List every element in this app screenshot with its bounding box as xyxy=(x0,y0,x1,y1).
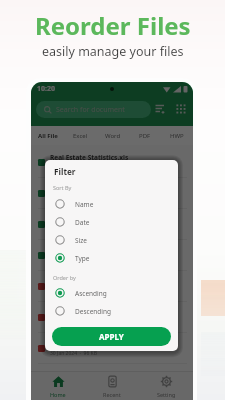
staticText: Date xyxy=(75,218,90,227)
staticText: Filter xyxy=(54,166,76,177)
button[interactable]: Sort xyxy=(151,100,169,118)
staticText: Real Estate Statistics.xls xyxy=(50,153,129,162)
staticText: Sort By xyxy=(53,184,72,191)
staticText: Product Inventory.xls xyxy=(50,246,120,255)
staticText: 09 Mar 2024 · 18 KB xyxy=(50,195,100,202)
button[interactable]: Grid view xyxy=(173,100,189,118)
button[interactable]: Rental Agreement.pdf xyxy=(38,271,187,301)
button[interactable]: Search for document xyxy=(36,101,151,118)
staticText: 14 Feb 2024 · 80 KB xyxy=(50,288,99,295)
staticText: Annual Sales Report.xls xyxy=(50,215,126,224)
staticText: Name xyxy=(75,200,94,209)
staticText: 12 Mar 2024 · 24 KB xyxy=(50,164,100,171)
staticText: PDF xyxy=(139,132,151,140)
staticText: All File xyxy=(38,132,58,140)
button[interactable]: All File xyxy=(31,126,64,145)
staticText: Descending xyxy=(75,307,112,316)
staticText: User Manual v3.pdf xyxy=(50,339,113,348)
staticText: Recent xyxy=(103,391,121,398)
button[interactable]: Type xyxy=(45,249,178,267)
button[interactable]: Name xyxy=(45,195,178,213)
button[interactable]: Invoice 2024-02.pdf xyxy=(38,302,187,332)
staticText: 10:20 xyxy=(37,84,55,94)
staticText: Order by xyxy=(53,274,76,281)
staticText: Ascending xyxy=(75,289,107,298)
button[interactable]: Excel xyxy=(64,126,97,145)
button[interactable]: HWP xyxy=(161,126,193,145)
button[interactable]: Home xyxy=(31,372,85,400)
button[interactable]: Size xyxy=(45,231,178,249)
staticText: Word xyxy=(105,132,121,140)
button[interactable]: Monthly Budget Plan.xls xyxy=(38,178,187,208)
staticText: Reorder Files xyxy=(35,9,191,42)
staticText: 28 Feb 2024 · 36 KB xyxy=(50,226,99,233)
staticText: APPLY xyxy=(99,331,124,342)
button[interactable]: Product Inventory.xls xyxy=(38,240,187,270)
button[interactable]: Annual Sales Report.xls xyxy=(38,209,187,239)
button[interactable]: User Manual v3.pdf xyxy=(38,333,187,363)
staticText: 30 Jan 2024 · 96 KB xyxy=(50,350,97,357)
button[interactable]: Real Estate Statistics.xls xyxy=(38,147,187,177)
staticText: Monthly Budget Plan.xls xyxy=(50,184,129,193)
staticText: Size xyxy=(75,236,87,245)
staticText: Rental Agreement.pdf xyxy=(50,277,122,286)
button[interactable]: Date xyxy=(45,213,178,231)
button[interactable]: Ascending xyxy=(45,284,178,302)
staticText: Setting xyxy=(157,391,176,398)
button[interactable]: Recent xyxy=(85,372,139,400)
button[interactable]: Setting xyxy=(139,372,193,400)
staticText: HWP xyxy=(170,132,184,140)
button[interactable]: Descending xyxy=(45,302,178,320)
staticText: Excel xyxy=(73,132,88,140)
staticText: Search for document xyxy=(56,105,125,115)
button[interactable]: APPLY xyxy=(52,327,171,346)
staticText: Home xyxy=(50,391,66,398)
staticText: Type xyxy=(75,254,90,263)
staticText: 21 Feb 2024 · 12 KB xyxy=(50,257,99,264)
button[interactable]: Word xyxy=(97,126,129,145)
staticText: easily manage your files xyxy=(42,43,184,60)
button[interactable]: PDF xyxy=(129,126,161,145)
staticText: Invoice 2024-02.pdf xyxy=(50,308,113,317)
